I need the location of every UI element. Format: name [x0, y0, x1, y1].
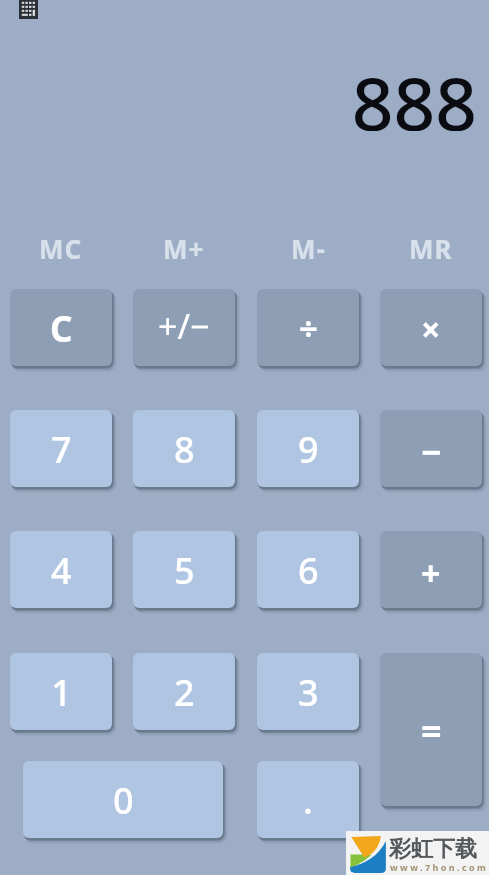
staticText: + [421, 550, 441, 596]
staticText: +/− [158, 303, 210, 349]
staticText: 4 [51, 546, 72, 595]
staticText: − [421, 428, 442, 476]
staticText: 0 [113, 776, 134, 825]
staticText: 3 [298, 668, 319, 717]
staticText: M+ [163, 231, 205, 266]
staticText: 888 [351, 53, 477, 131]
button[interactable]: decimal point [257, 761, 359, 838]
button[interactable]: 8 [133, 410, 235, 487]
button[interactable]: 4 [10, 531, 112, 608]
staticText: 彩虹下载 [389, 835, 477, 863]
button[interactable]: M- [257, 227, 359, 269]
button[interactable]: 1 [10, 653, 112, 730]
staticText: MR [409, 231, 453, 266]
staticText: = [421, 706, 442, 755]
staticText: 6 [298, 546, 319, 595]
staticText: 7 [51, 425, 72, 474]
button[interactable]: divide [257, 289, 359, 366]
button[interactable]: equals [380, 653, 482, 806]
button[interactable]: 0 [23, 761, 223, 838]
button[interactable]: 2 [133, 653, 235, 730]
button[interactable]: Calculator [19, 0, 38, 19]
button[interactable]: 5 [133, 531, 235, 608]
button[interactable]: minus [380, 410, 482, 487]
staticText: . [303, 776, 313, 825]
staticText: 2 [174, 668, 195, 717]
staticText: 1 [51, 668, 72, 717]
staticText: × [421, 306, 441, 352]
staticText: ÷ [299, 306, 318, 351]
staticText: MC [39, 231, 83, 266]
button[interactable]: plus minus [133, 289, 235, 366]
staticText: 5 [174, 546, 195, 595]
staticText: 9 [298, 425, 319, 474]
button[interactable]: 9 [257, 410, 359, 487]
button[interactable]: 6 [257, 531, 359, 608]
button[interactable]: M+ [133, 227, 235, 269]
button[interactable]: multiply [380, 289, 482, 366]
button[interactable]: MC [10, 227, 112, 269]
staticText: www.7hon.com [390, 861, 489, 873]
button[interactable]: 3 [257, 653, 359, 730]
staticText: C [50, 305, 73, 353]
staticText: 8 [174, 425, 195, 474]
button[interactable]: clear [10, 289, 112, 366]
staticText: M- [291, 231, 326, 266]
button[interactable]: plus [380, 531, 482, 608]
button[interactable]: 7 [10, 410, 112, 487]
button[interactable]: MR [380, 227, 482, 269]
